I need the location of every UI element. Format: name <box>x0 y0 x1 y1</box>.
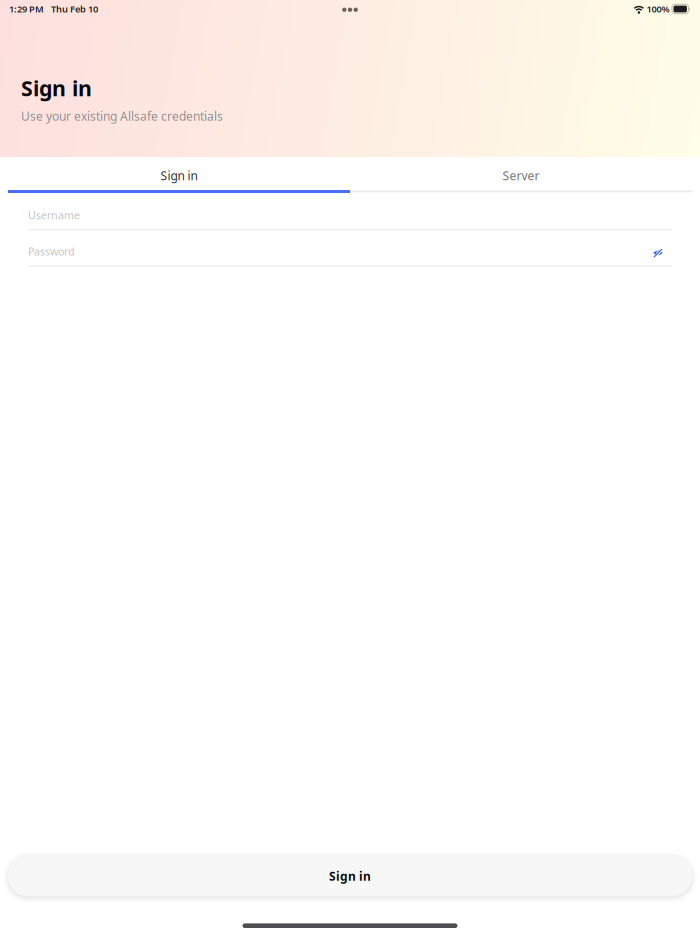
button[interactable]: Server <box>350 157 692 190</box>
staticText: Server <box>502 167 539 183</box>
button[interactable]: Sign in <box>8 157 350 190</box>
button[interactable]: Sign in <box>0 850 700 902</box>
staticText: Use your existing Allsafe credentials <box>21 108 223 124</box>
staticText: 1:29 PM <box>9 3 44 15</box>
staticText: 100% <box>646 3 669 15</box>
staticText: Sign in <box>160 167 197 183</box>
staticText: Password <box>28 244 75 258</box>
staticText: Username <box>28 208 80 222</box>
staticText: Thu Feb 10 <box>51 3 98 15</box>
staticText: Sign in <box>21 74 92 102</box>
button[interactable]: Show password <box>648 241 668 261</box>
staticText: Sign in <box>329 868 371 884</box>
